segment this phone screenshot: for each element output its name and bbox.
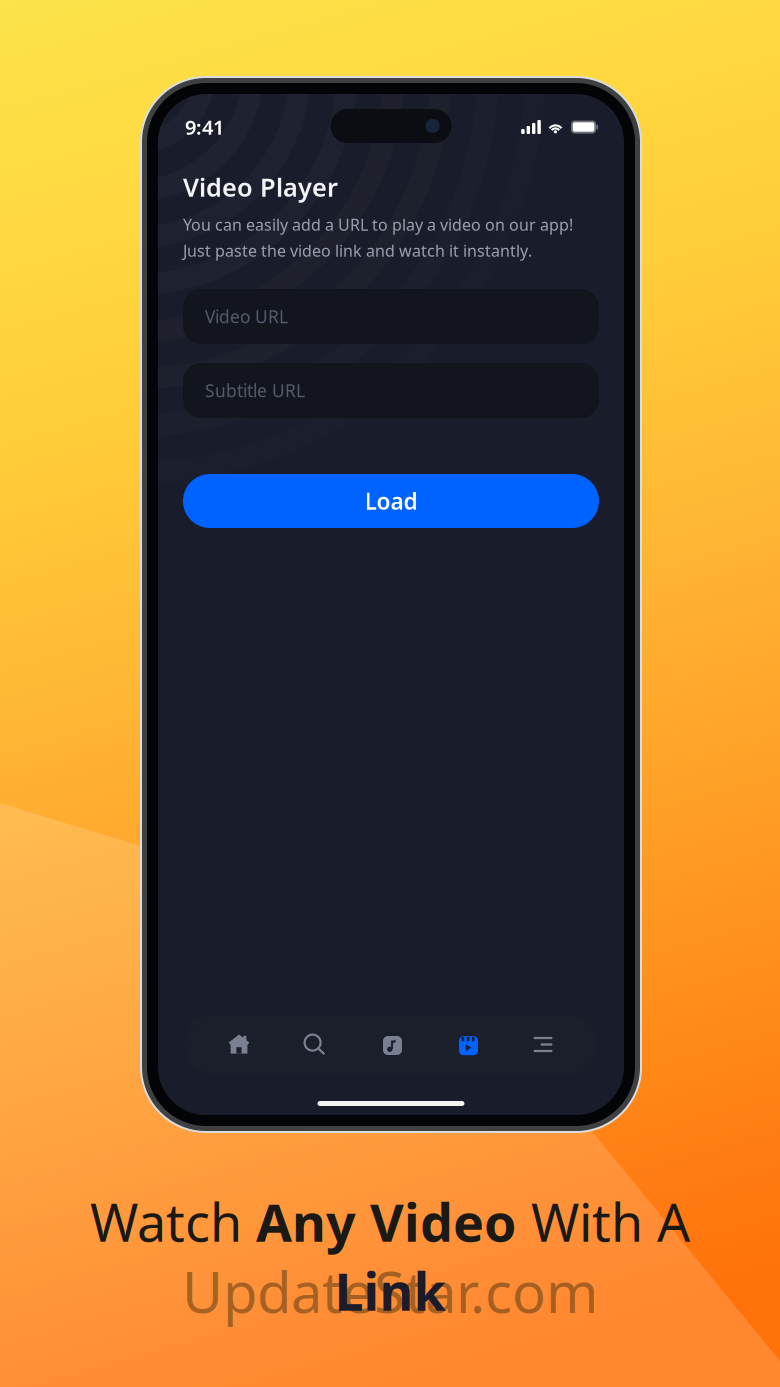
button[interactable]: Videos — [429, 1015, 505, 1074]
staticText: Link — [334, 1256, 445, 1325]
button[interactable]: Load — [183, 474, 599, 528]
staticText: Just paste the video link and watch it i… — [183, 240, 532, 261]
staticText: Watch Any Video With A — [90, 1187, 690, 1256]
button[interactable]: Video URL — [183, 289, 599, 344]
staticText: Subtitle URL — [205, 379, 305, 402]
staticText: Video Player — [183, 170, 338, 204]
staticText: UpdateStar.com — [182, 1254, 598, 1328]
button[interactable]: Search — [277, 1015, 353, 1074]
button[interactable]: Home — [201, 1015, 277, 1074]
staticText: You can easily add a URL to play a video… — [183, 214, 573, 235]
button[interactable]: Subtitle URL — [183, 363, 599, 418]
staticText: Load — [364, 486, 417, 516]
staticText: 9:41 — [185, 114, 224, 140]
button[interactable]: More — [505, 1015, 581, 1074]
staticText: Video URL — [205, 305, 288, 328]
button[interactable]: Library — [353, 1015, 429, 1074]
